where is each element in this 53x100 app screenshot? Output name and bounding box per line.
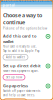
staticText: Set up now xyxy=(6,75,22,79)
staticText: Your card is ready to use. xyxy=(3,45,37,48)
staticText: Choose a way to continue xyxy=(3,12,42,26)
staticText: ‹ xyxy=(2,0,4,3)
staticText: Pick one of the options below xyxy=(3,27,47,30)
staticText: Go paperless xyxy=(3,83,28,88)
staticText: and help us save trees. xyxy=(3,93,35,97)
button[interactable]: ‹ xyxy=(0,0,13,3)
staticText: Set up direct debit xyxy=(3,63,41,68)
staticText: Switch off paper statements xyxy=(3,89,40,93)
staticText: Tap to add it to Apple Pay. xyxy=(3,49,40,53)
button[interactable]: Go paperless xyxy=(3,99,27,100)
staticText: Never miss a payment again. xyxy=(3,69,39,73)
staticText: Add to wallet xyxy=(6,55,25,59)
button[interactable]: Add to wallet xyxy=(3,54,28,60)
staticText: Add this card to wallet xyxy=(3,33,36,44)
staticText: Back xyxy=(4,0,13,1)
staticText: Welcome to the customer portal xyxy=(2,0,52,8)
button[interactable]: Set up now xyxy=(3,74,25,80)
